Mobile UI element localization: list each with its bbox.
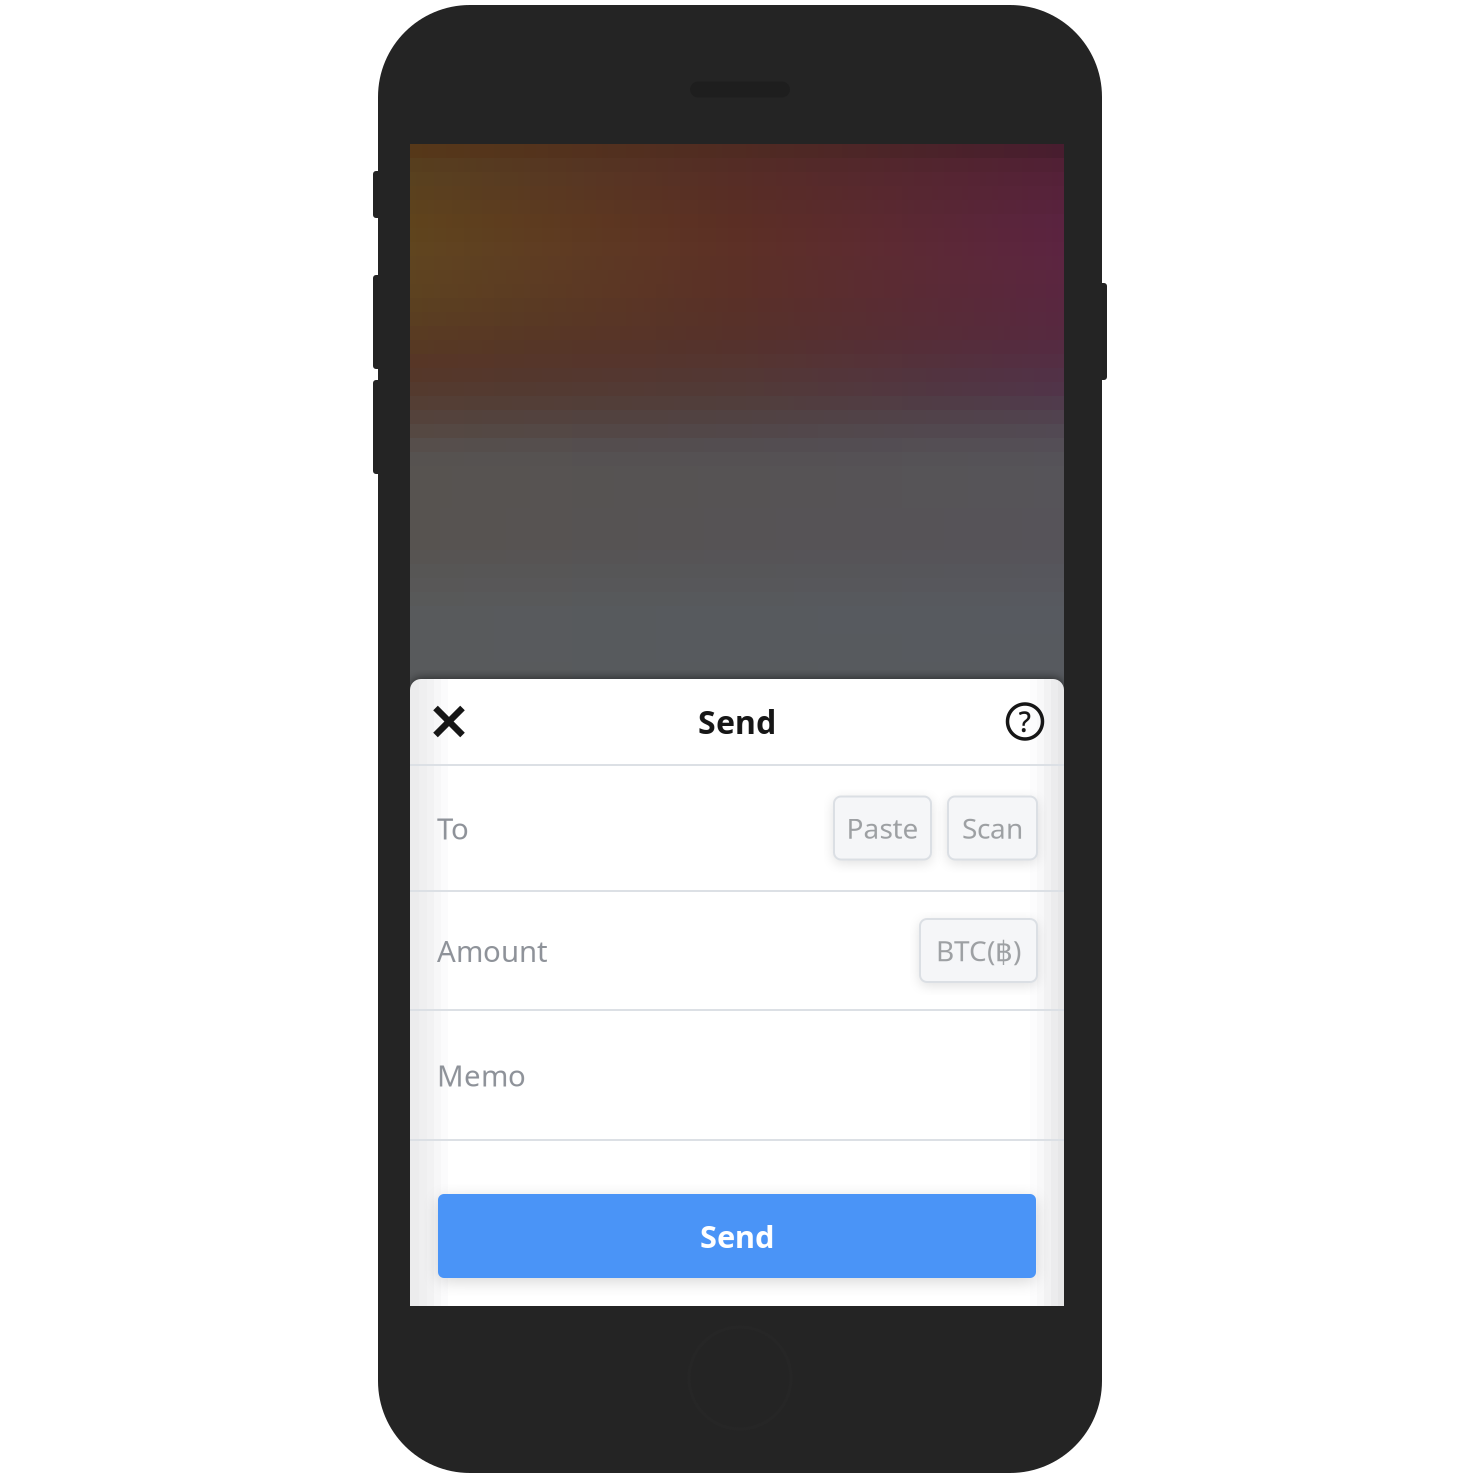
staticText: Memo (437, 1055, 526, 1094)
staticText: Paste (846, 809, 918, 847)
button[interactable]: Send (438, 1194, 1036, 1278)
staticText: Scan (962, 809, 1023, 847)
staticText: Send (698, 700, 776, 743)
staticText: Send (700, 1216, 774, 1256)
staticText: To (437, 808, 469, 847)
button[interactable]: Paste (834, 796, 931, 859)
button[interactable]: BTC(฿) (920, 919, 1037, 982)
button[interactable]: Close (419, 691, 479, 751)
staticText: Amount (437, 931, 548, 970)
staticText: ? (1018, 703, 1031, 740)
staticText: BTC(฿) (936, 932, 1021, 969)
button[interactable]: Scan (948, 796, 1037, 859)
button[interactable]: Help (995, 691, 1055, 751)
